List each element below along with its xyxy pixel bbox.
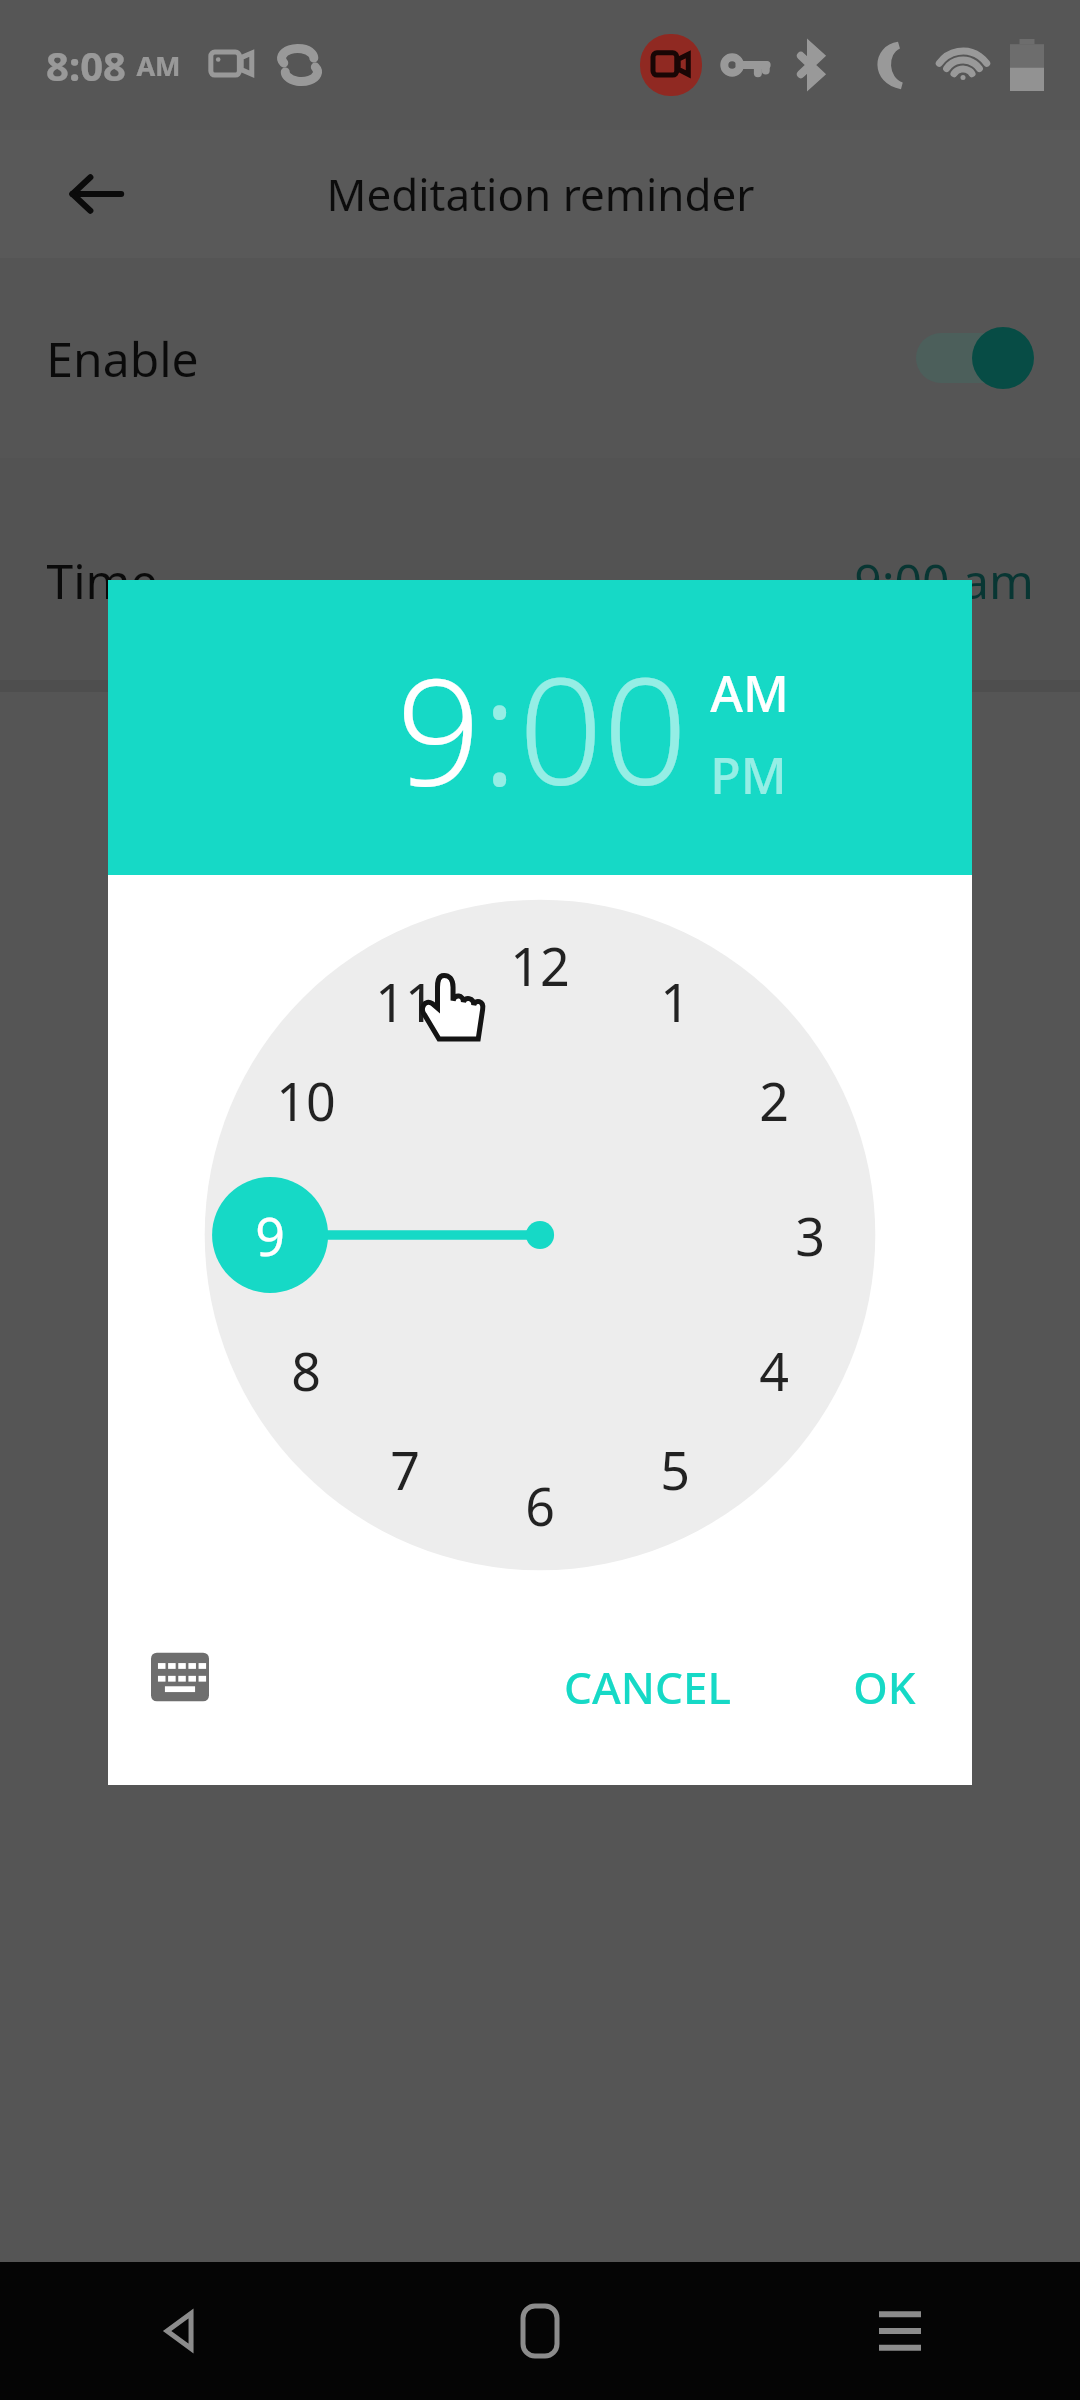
staticText: AM <box>710 659 789 727</box>
staticText: 00 <box>518 627 688 829</box>
staticText: 9 <box>396 627 481 829</box>
staticText: 12 <box>510 930 570 1001</box>
staticText: 8:08 <box>46 38 126 92</box>
staticText: 4 <box>759 1335 789 1406</box>
button[interactable]: Clock face, hour 9 selected <box>190 885 890 1585</box>
staticText: OK <box>853 1657 916 1717</box>
staticText: Meditation reminder <box>326 164 755 224</box>
button[interactable]: Enable <box>0 258 1080 458</box>
button[interactable]: Recents <box>720 2262 1080 2400</box>
button[interactable]: Back <box>0 2262 360 2400</box>
button[interactable]: CANCEL <box>538 1631 757 1743</box>
staticText: Time <box>46 548 158 613</box>
staticText: 1 <box>660 966 690 1037</box>
button[interactable]: Back <box>48 146 144 242</box>
staticText: 9 <box>255 1200 285 1271</box>
staticText: Enable <box>46 326 199 391</box>
staticText: : <box>481 627 518 829</box>
button[interactable]: PM <box>710 741 787 809</box>
staticText: 11 <box>375 966 435 1037</box>
staticText: CANCEL <box>564 1657 731 1717</box>
button[interactable]: 00 <box>518 627 688 829</box>
button[interactable]: OK <box>827 1631 942 1743</box>
staticText: 2 <box>759 1065 789 1136</box>
staticText: 3 <box>795 1200 825 1271</box>
button[interactable]: Time <box>0 480 1080 680</box>
button[interactable]: AM <box>710 659 789 727</box>
staticText: PM <box>710 741 787 809</box>
staticText: 8 <box>291 1335 321 1406</box>
staticText: 7 <box>390 1434 420 1505</box>
button[interactable]: Home <box>360 2262 720 2400</box>
staticText: 5 <box>660 1434 690 1505</box>
staticText: 10 <box>276 1065 336 1136</box>
button[interactable]: Switch to keyboard input <box>132 1629 228 1725</box>
staticText: AM <box>136 47 181 84</box>
button[interactable]: 9 <box>396 627 481 829</box>
staticText: 6 <box>525 1470 555 1541</box>
staticText: 9:00 am <box>854 548 1034 613</box>
